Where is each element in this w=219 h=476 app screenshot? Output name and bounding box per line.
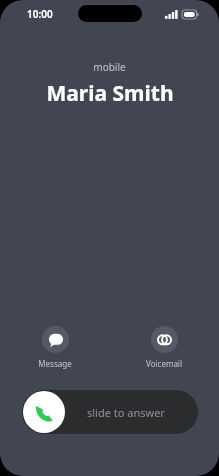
- staticText: slide to answer: [87, 405, 165, 420]
- other: Voicemail: [157, 332, 172, 347]
- staticText: Message: [38, 358, 72, 369]
- staticText: Maria Smith: [46, 79, 174, 108]
- staticText: Voicemail: [146, 358, 182, 369]
- button[interactable]: slide to answer: [22, 390, 198, 434]
- staticText: 10:00: [27, 7, 53, 21]
- button[interactable]: Answer call: [23, 391, 65, 433]
- other: Message: [49, 333, 63, 347]
- staticText: mobile: [93, 60, 126, 74]
- button[interactable]: Message: [32, 324, 78, 371]
- button[interactable]: Voicemail: [140, 324, 188, 371]
